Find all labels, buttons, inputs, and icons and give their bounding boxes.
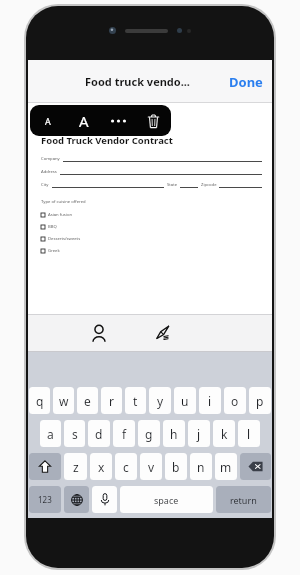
staticText: d xyxy=(95,426,103,442)
button[interactable]: r xyxy=(101,387,122,414)
staticText: l xyxy=(247,426,251,442)
staticText: n xyxy=(197,459,205,475)
staticText: w xyxy=(59,393,69,409)
button[interactable]: y xyxy=(149,387,171,414)
button[interactable]: Shift xyxy=(29,453,61,480)
button[interactable]: v xyxy=(140,453,162,480)
staticText: y xyxy=(157,393,164,409)
staticText: j xyxy=(197,426,201,442)
button[interactable]: t xyxy=(125,387,146,414)
button[interactable]: Signature xyxy=(87,320,111,347)
button[interactable]: h xyxy=(163,420,185,447)
staticText: h xyxy=(170,426,178,442)
button[interactable]: Backspace xyxy=(240,453,271,480)
button[interactable]: Draw xyxy=(149,320,175,346)
button[interactable]: w xyxy=(53,387,74,414)
staticText: x xyxy=(98,459,105,475)
button[interactable]: n xyxy=(190,453,212,480)
button[interactable]: b xyxy=(165,453,187,480)
staticText: Company xyxy=(41,156,60,162)
staticText: a xyxy=(47,426,54,442)
staticText: Food Truck Vendor Contract xyxy=(41,134,173,147)
button[interactable]: Change keyboard language xyxy=(64,486,89,513)
staticText: u xyxy=(181,393,189,409)
staticText: Done xyxy=(229,73,263,91)
button[interactable]: Done xyxy=(220,66,272,98)
staticText: q xyxy=(36,393,44,409)
button[interactable]: 123 xyxy=(29,486,61,513)
staticText: A xyxy=(45,115,51,127)
staticText: Type of cuisine offered xyxy=(41,199,86,205)
staticText: 123 xyxy=(38,494,52,505)
button[interactable]: d xyxy=(88,420,110,447)
staticText: v xyxy=(148,459,155,475)
button[interactable]: return xyxy=(216,486,271,513)
staticText: f xyxy=(122,426,127,442)
button[interactable]: c xyxy=(115,453,137,480)
staticText: s xyxy=(72,426,78,442)
staticText: Address xyxy=(41,169,57,175)
staticText: Zipcode xyxy=(201,182,217,188)
staticText: City xyxy=(41,182,49,188)
staticText: e xyxy=(84,393,91,409)
staticText: z xyxy=(73,459,79,475)
button[interactable]: Delete xyxy=(136,105,171,136)
staticText: i xyxy=(208,393,212,409)
staticText: BBQ xyxy=(48,224,57,230)
button[interactable]: i xyxy=(199,387,221,414)
staticText: return xyxy=(230,494,257,506)
button[interactable]: Small text xyxy=(30,105,66,136)
button[interactable]: a xyxy=(40,420,61,447)
staticText: c xyxy=(123,459,129,475)
button[interactable]: s xyxy=(64,420,85,447)
staticText: k xyxy=(221,426,228,442)
staticText: Greek xyxy=(48,248,60,254)
staticText: space xyxy=(154,494,179,506)
button[interactable]: f xyxy=(113,420,135,447)
staticText: A xyxy=(79,111,89,131)
button[interactable]: z xyxy=(64,453,87,480)
button[interactable]: e xyxy=(77,387,98,414)
staticText: b xyxy=(172,459,180,475)
staticText: p xyxy=(256,393,264,409)
button[interactable]: m xyxy=(215,453,237,480)
button[interactable]: j xyxy=(188,420,210,447)
staticText: o xyxy=(231,393,239,409)
staticText: Desserts/sweets xyxy=(48,236,81,242)
button[interactable]: q xyxy=(29,387,50,414)
button[interactable]: Large text xyxy=(66,105,101,136)
staticText: g xyxy=(145,426,153,442)
button[interactable]: Voice input xyxy=(92,486,117,513)
button[interactable]: x xyxy=(90,453,112,480)
staticText: r xyxy=(109,393,114,409)
button[interactable]: u xyxy=(174,387,196,414)
staticText: m xyxy=(220,459,232,475)
staticText: t xyxy=(133,393,138,409)
button[interactable]: o xyxy=(224,387,246,414)
button[interactable]: More options xyxy=(101,105,136,136)
staticText: Food truck vendo... xyxy=(85,74,190,89)
staticText: Asian fusion xyxy=(48,212,73,218)
button[interactable]: g xyxy=(138,420,160,447)
button[interactable]: p xyxy=(249,387,271,414)
staticText: State xyxy=(167,182,178,188)
button[interactable]: l xyxy=(238,420,260,447)
button[interactable]: space xyxy=(120,486,213,513)
button[interactable]: k xyxy=(213,420,235,447)
